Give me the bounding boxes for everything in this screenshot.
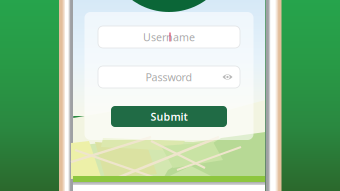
staticText: Password <box>145 70 192 84</box>
staticText: Submit <box>150 109 187 124</box>
button[interactable]: Submit <box>111 106 227 127</box>
button[interactable]: Password <box>98 66 240 88</box>
staticText: Username <box>143 30 195 44</box>
button[interactable]: Username <box>98 26 240 48</box>
